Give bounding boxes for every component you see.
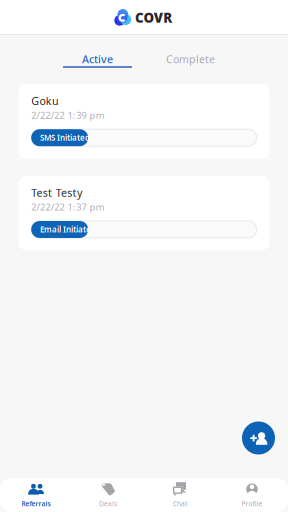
- staticText: SMS Initiated: [40, 132, 90, 143]
- button[interactable]: Test Testy: [18, 176, 269, 250]
- staticText: Test Testy: [31, 185, 82, 200]
- button[interactable]: Profile: [216, 479, 288, 512]
- button[interactable]: Add referral: [242, 421, 275, 454]
- button[interactable]: Complete: [144, 52, 237, 68]
- staticText: Goku: [31, 94, 59, 108]
- button[interactable]: Goku: [18, 84, 269, 159]
- button[interactable]: Chat: [144, 479, 216, 512]
- staticText: Deals: [99, 499, 117, 508]
- staticText: 2/22/22 1:39 pm: [31, 109, 105, 121]
- button[interactable]: Active: [51, 52, 144, 68]
- staticText: Chat: [173, 499, 187, 508]
- button[interactable]: Referrals: [0, 479, 72, 512]
- staticText: Complete: [166, 52, 215, 66]
- button[interactable]: Deals: [72, 479, 144, 512]
- staticText: Profile: [241, 499, 262, 508]
- staticText: Active: [82, 52, 113, 66]
- staticText: Email Initiated: [40, 224, 96, 235]
- staticText: Referrals: [21, 499, 50, 508]
- staticText: COVR: [135, 9, 172, 26]
- staticText: 2/22/22 1:37 pm: [31, 201, 105, 213]
